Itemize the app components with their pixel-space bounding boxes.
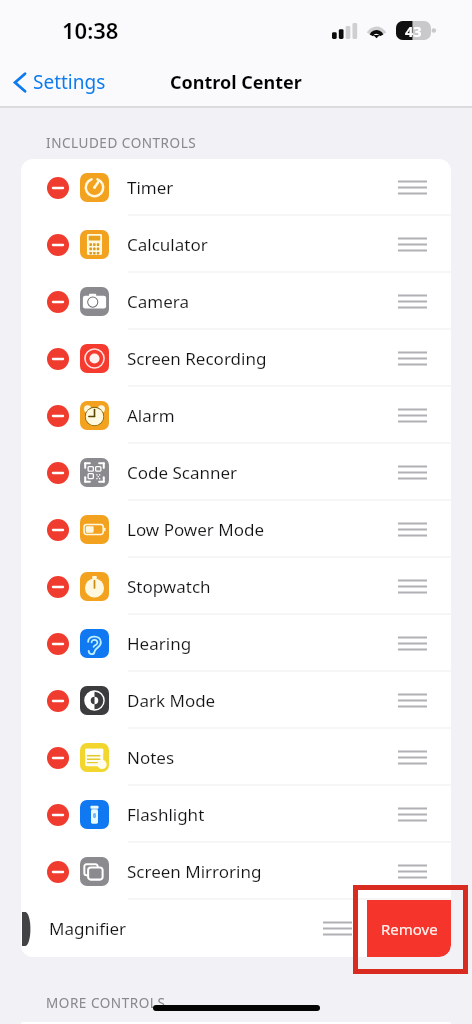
button[interactable]: Reorder Magnifier (323, 921, 352, 936)
button[interactable]: Remove (367, 900, 451, 957)
staticText: Camera (127, 290, 189, 313)
staticText: Alarm (127, 404, 175, 427)
staticText: Flashlight (127, 803, 205, 826)
button[interactable]: Reorder Flashlight (398, 807, 427, 822)
staticText: Magnifier (49, 917, 127, 940)
button[interactable]: Remove Notes (21, 729, 451, 786)
button[interactable]: Remove Dark Mode (47, 690, 69, 712)
staticText: Code Scanner (127, 461, 238, 484)
button[interactable]: Reorder Hearing (398, 636, 427, 651)
button[interactable]: Reorder Calculator (398, 237, 427, 252)
staticText: Calculator (127, 233, 208, 256)
button[interactable]: Reorder Code Scanner (398, 465, 427, 480)
button[interactable]: Remove Hearing (21, 615, 451, 672)
button[interactable]: Magnifier (21, 900, 451, 957)
button[interactable]: Remove Timer (21, 159, 451, 216)
button[interactable]: Reorder Stopwatch (398, 579, 427, 594)
button[interactable]: Reorder Dark Mode (398, 693, 427, 708)
button[interactable]: Remove Stopwatch (47, 576, 69, 598)
button[interactable]: Reorder Camera (398, 294, 427, 309)
button[interactable]: Remove Dark Mode (21, 672, 451, 729)
button[interactable]: Remove Timer (47, 177, 69, 199)
button[interactable]: Remove Screen Mirroring (47, 861, 69, 883)
staticText: Notes (127, 746, 175, 769)
button[interactable]: Remove Low Power Mode (21, 501, 451, 558)
button[interactable]: Settings (14, 69, 106, 95)
button[interactable]: Reorder Alarm (398, 408, 427, 423)
button[interactable]: Remove Alarm (47, 405, 69, 427)
staticText: MORE CONTROLS (46, 994, 166, 1012)
staticText: Stopwatch (127, 575, 211, 598)
button[interactable]: Remove Code Scanner (47, 462, 69, 484)
staticText: Dark Mode (127, 689, 216, 712)
staticText: Remove (381, 919, 438, 939)
button[interactable]: Reorder Screen Recording (398, 351, 427, 366)
button[interactable]: Remove Low Power Mode (47, 519, 69, 541)
button[interactable]: Reorder Screen Mirroring (398, 864, 427, 879)
button[interactable]: Reorder Low Power Mode (398, 522, 427, 537)
button[interactable]: Remove Alarm (21, 387, 451, 444)
button[interactable]: Remove Flashlight (21, 786, 451, 843)
button[interactable]: Reorder Notes (398, 750, 427, 765)
button[interactable]: Remove Screen Mirroring (21, 843, 451, 900)
staticText: Screen Mirroring (127, 860, 262, 883)
button[interactable]: Remove Camera (21, 273, 451, 330)
staticText: Timer (127, 176, 174, 199)
button[interactable]: Remove Screen Recording (21, 330, 451, 387)
button[interactable]: Remove Camera (47, 291, 69, 313)
button[interactable]: Remove Stopwatch (21, 558, 451, 615)
button[interactable]: Reorder Timer (398, 180, 427, 195)
button[interactable]: Remove Flashlight (47, 804, 69, 826)
staticText: Low Power Mode (127, 518, 265, 541)
staticText: 43 (405, 21, 422, 40)
button[interactable]: Remove Code Scanner (21, 444, 451, 501)
button[interactable]: Remove Calculator (21, 216, 451, 273)
staticText: Hearing (127, 632, 192, 655)
button[interactable]: Remove Screen Recording (47, 348, 69, 370)
staticText: Control Center (170, 70, 302, 95)
staticText: INCLUDED CONTROLS (46, 134, 197, 152)
button[interactable]: Remove Notes (47, 747, 69, 769)
button[interactable]: Remove Calculator (47, 234, 69, 256)
staticText: Settings (33, 69, 106, 95)
button[interactable]: Remove Hearing (47, 633, 69, 655)
staticText: Screen Recording (127, 347, 267, 370)
staticText: 10:38 (62, 15, 119, 45)
